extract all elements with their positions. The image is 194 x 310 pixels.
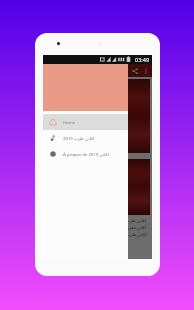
button[interactable]: Home bbox=[43, 114, 128, 130]
staticText: اغاني مغربية شعبية bbox=[113, 225, 147, 231]
staticText: 03:49 bbox=[135, 56, 150, 63]
staticText: Home bbox=[63, 119, 76, 125]
button[interactable]: اغاني طرب قديمة bbox=[43, 159, 150, 251]
button[interactable]: اغاني طرب 2019 bbox=[43, 130, 128, 146]
button[interactable]: More options bbox=[140, 65, 151, 76]
staticText: اغاني طرب 2019 bbox=[116, 232, 147, 238]
button[interactable]: Share bbox=[129, 65, 140, 76]
staticText: اغاني طرب قديمة bbox=[115, 218, 147, 224]
staticText: À propos de اغاني 2019 bbox=[63, 151, 109, 157]
staticText: اغاني طرب 2019 bbox=[63, 135, 95, 141]
button[interactable] bbox=[43, 79, 150, 153]
button[interactable]: À propos de اغاني 2019 bbox=[43, 146, 128, 162]
